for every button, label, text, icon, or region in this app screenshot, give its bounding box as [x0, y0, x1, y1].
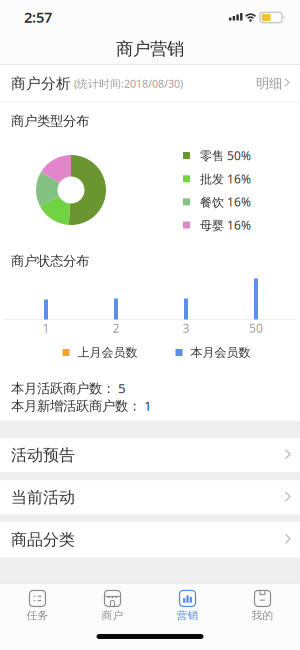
staticText: 上月会员数	[77, 345, 137, 360]
staticText: 商户营销	[116, 38, 184, 60]
staticText: 2:57	[24, 7, 52, 27]
button[interactable]: 营销	[150, 583, 225, 629]
staticText: 活动预告	[11, 445, 75, 465]
staticText: 本月活跃商户数： 5	[11, 379, 126, 397]
staticText: 零售 50%	[200, 147, 251, 163]
button[interactable]: 活动预告	[0, 438, 300, 472]
button[interactable]: 我的	[225, 583, 300, 629]
staticText: 商户	[101, 609, 123, 622]
button[interactable]: 当前活动	[0, 480, 300, 514]
button[interactable]: 商户	[75, 583, 150, 629]
staticText: 1	[42, 320, 49, 336]
staticText: 当前活动	[11, 488, 75, 507]
staticText: 本月新增活跃商户数： 1	[11, 397, 152, 414]
staticText: 商户状态分布	[11, 253, 89, 269]
staticText: 明细	[256, 75, 282, 92]
staticText: (统计时间:2018/08/30)	[74, 76, 183, 91]
button[interactable]: 任务	[0, 583, 75, 629]
staticText: 商户分析	[11, 74, 71, 92]
staticText: 50	[249, 320, 263, 336]
staticText: 商品分类	[11, 530, 75, 550]
staticText: 2	[112, 320, 119, 336]
staticText: 我的	[251, 609, 273, 622]
staticText: 营销	[176, 609, 198, 622]
staticText: 餐饮 16%	[200, 194, 251, 210]
staticText: 母婴 16%	[200, 217, 251, 233]
staticText: 任务	[26, 609, 48, 622]
staticText: 商户类型分布	[11, 113, 89, 129]
staticText: 3	[182, 320, 189, 336]
staticText: 批发 16%	[200, 171, 251, 187]
button[interactable]: 商品分类	[0, 522, 300, 557]
button[interactable]: 商户分析	[0, 65, 300, 102]
staticText: 本月会员数	[190, 345, 250, 360]
